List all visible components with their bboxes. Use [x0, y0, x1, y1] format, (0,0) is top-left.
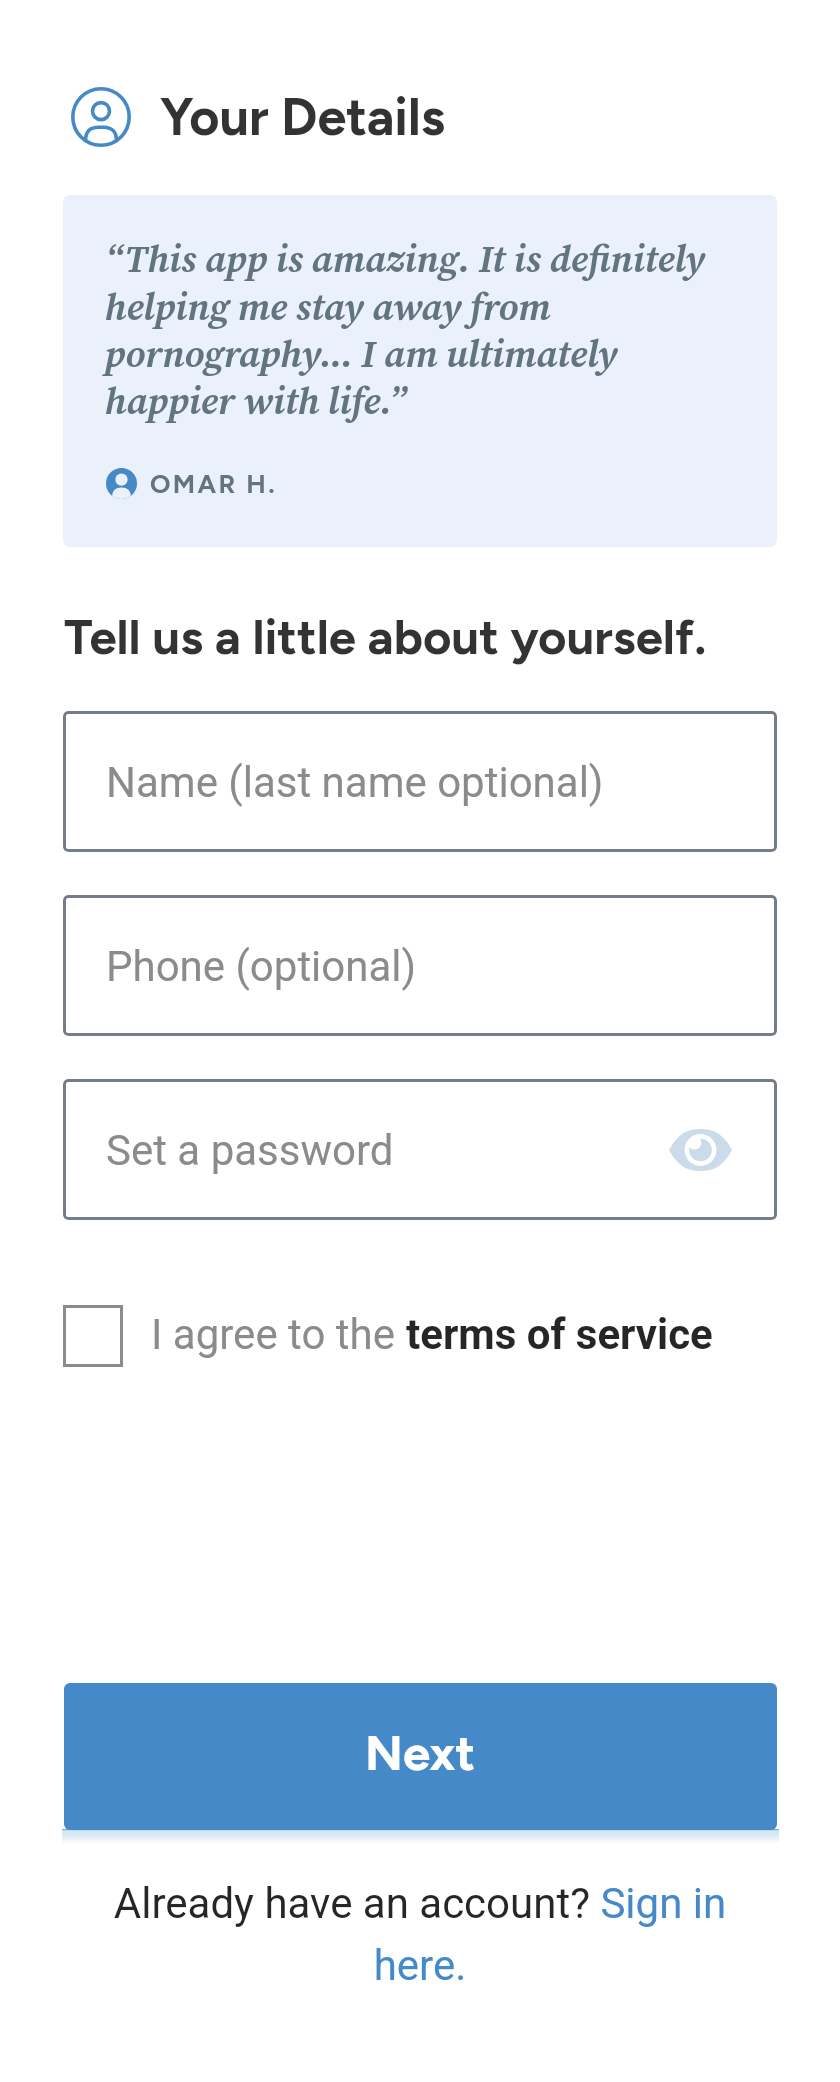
- staticText: Your Details: [160, 86, 446, 148]
- staticText: OMAR H.: [150, 468, 278, 499]
- staticText: “This app is amazing. It is definitely h…: [105, 233, 727, 426]
- staticText: Phone (optional): [106, 942, 417, 991]
- staticText: Name (last name optional): [106, 758, 604, 807]
- button[interactable]: Phone (optional): [63, 895, 777, 1036]
- button[interactable]: Account: [71, 86, 446, 148]
- staticText: Tell us a little about yourself.: [64, 607, 707, 666]
- staticText: Already have an account? Sign in here.: [100, 1879, 740, 1990]
- button[interactable]: Next: [64, 1683, 777, 1830]
- other: Show password: [669, 1129, 732, 1171]
- staticText: Next: [365, 1723, 476, 1782]
- button[interactable]: Name (last name optional): [63, 711, 777, 852]
- button[interactable]: Set a password: [63, 1079, 777, 1220]
- button[interactable]: Already have an account? Sign in here.: [100, 1879, 740, 1990]
- staticText: Set a password: [106, 1126, 394, 1175]
- button[interactable]: I agree to the: [63, 1296, 713, 1376]
- staticText: I agree to the: [151, 1310, 406, 1359]
- other: Account: [71, 87, 131, 147]
- staticText: terms of service: [406, 1310, 713, 1359]
